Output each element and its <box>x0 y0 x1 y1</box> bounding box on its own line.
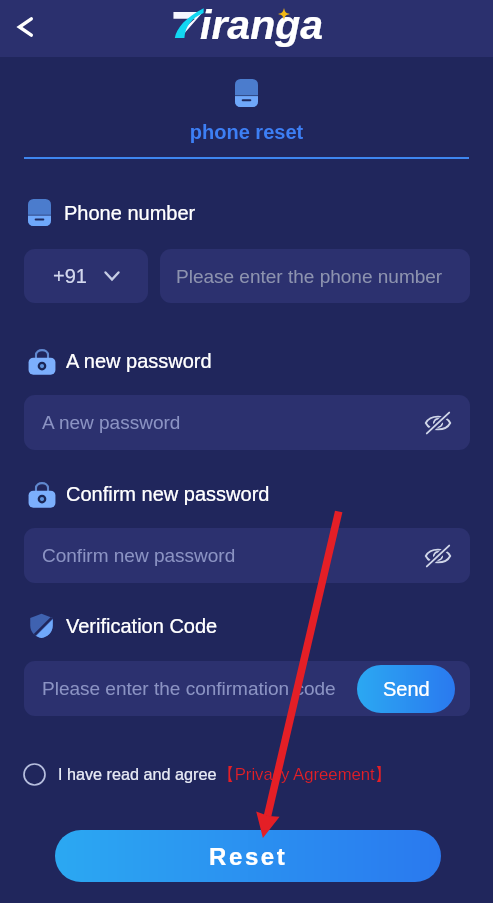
button[interactable]: Reset <box>55 830 441 882</box>
staticText: Please enter the confirmation code <box>42 678 336 699</box>
staticText: Confirm new password <box>66 483 270 505</box>
staticText: Send <box>383 678 430 700</box>
staticText: 【Privacy Agreement】 <box>218 764 392 785</box>
button[interactable]: Back <box>2 4 48 50</box>
button[interactable]: 【Privacy Agreement】 <box>218 764 392 785</box>
button[interactable]: Show password <box>421 539 455 573</box>
button[interactable]: A new password <box>24 395 470 450</box>
button[interactable]: Confirm new password <box>24 528 470 583</box>
staticText: A new password <box>66 350 212 372</box>
button[interactable]: +91 <box>24 249 148 303</box>
button[interactable]: Send <box>357 665 455 713</box>
button[interactable]: Agree checkbox <box>18 758 50 790</box>
staticText: Please enter the phone number <box>176 266 443 287</box>
button[interactable]: Show password <box>421 406 455 440</box>
staticText: Confirm new password <box>42 545 236 566</box>
staticText: +91 <box>53 265 87 287</box>
staticText: A new password <box>42 412 181 433</box>
staticText: Reset <box>209 843 288 870</box>
staticText: iranga <box>200 2 324 48</box>
staticText: I have read and agree <box>58 765 217 783</box>
staticText: phone reset <box>0 121 493 143</box>
staticText: Phone number <box>64 202 196 224</box>
staticText: Verification Code <box>66 615 218 637</box>
button[interactable]: Please enter the phone number <box>160 249 470 303</box>
